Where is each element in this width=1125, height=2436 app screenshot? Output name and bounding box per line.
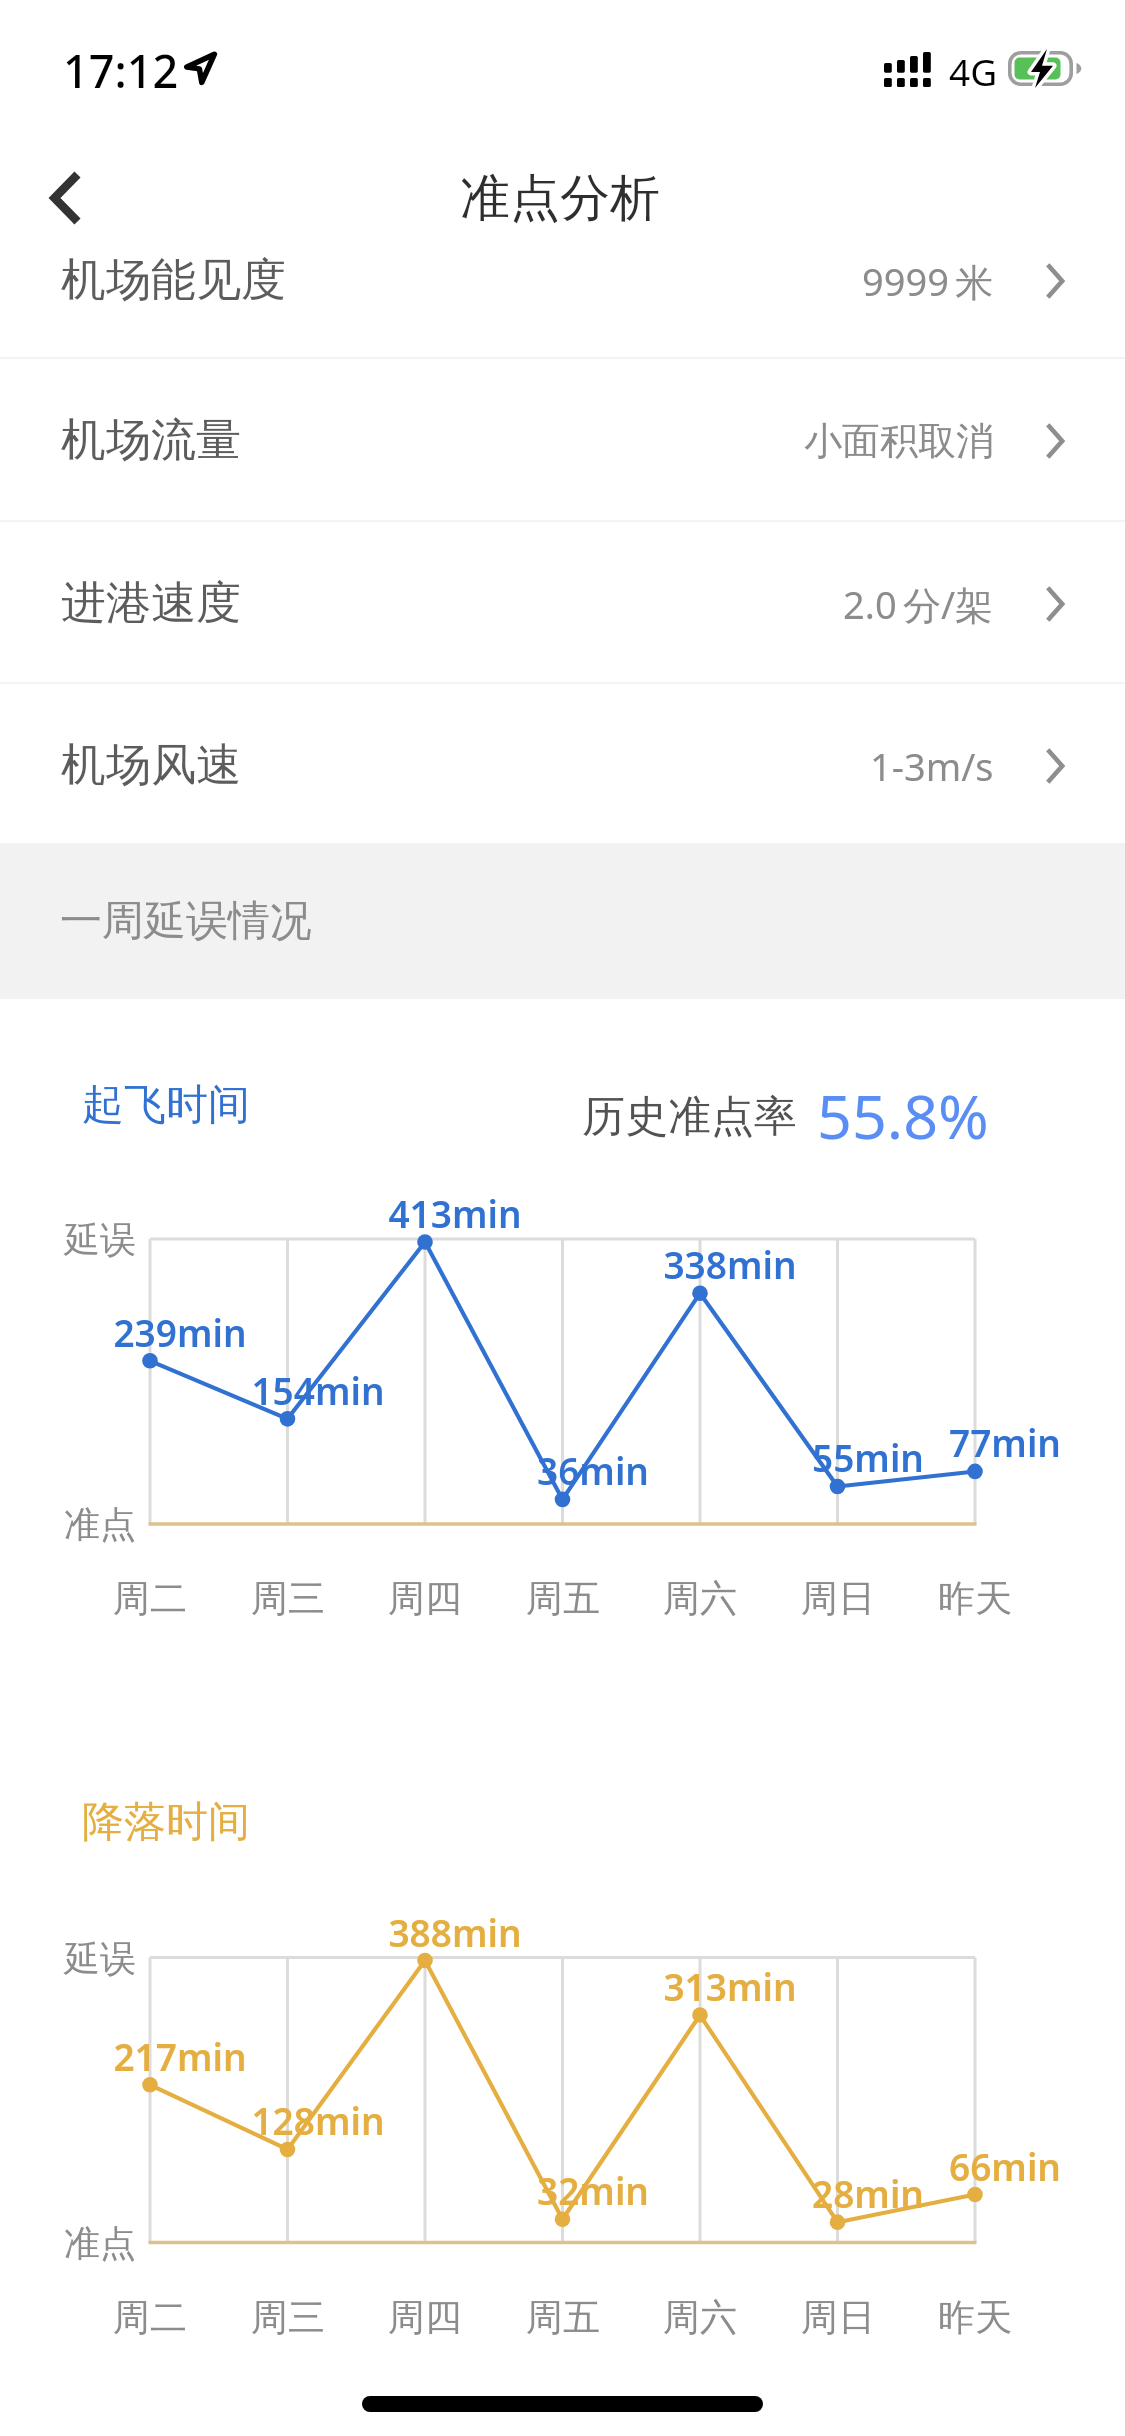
staticText: 66min: [949, 2141, 1061, 2191]
staticText: 周六: [663, 2294, 737, 2341]
button[interactable]: Back: [8, 145, 120, 251]
staticText: 周二: [113, 1575, 187, 1622]
staticText: 217min: [113, 2031, 247, 2081]
staticText: 周日: [801, 2294, 875, 2341]
button[interactable]: 机场能见度: [0, 199, 1125, 362]
staticText: 388min: [388, 1907, 522, 1957]
staticText: 延误: [64, 1217, 136, 1262]
staticText: 准点分析: [460, 167, 660, 230]
staticText: 延误: [64, 1936, 136, 1981]
staticText: 154min: [251, 1365, 385, 1415]
staticText: 进港速度: [61, 575, 241, 632]
staticText: 周六: [663, 1575, 737, 1622]
staticText: 413min: [388, 1188, 522, 1238]
staticText: 313min: [663, 1961, 797, 2011]
staticText: 55.8%: [817, 1074, 989, 1157]
staticText: 77min: [949, 1417, 1061, 1467]
button[interactable]: 机场风速: [0, 684, 1125, 847]
staticText: 周四: [388, 1575, 462, 1622]
staticText: 周三: [251, 1575, 325, 1622]
staticText: 55min: [812, 1432, 924, 1482]
staticText: 周三: [251, 2294, 325, 2341]
staticText: 338min: [663, 1239, 797, 1289]
staticText: 昨天: [938, 2294, 1012, 2341]
button[interactable]: 进港速度: [0, 522, 1125, 685]
staticText: 小面积取消: [804, 417, 994, 465]
staticText: 降落时间: [82, 1796, 250, 1849]
staticText: 起飞时间: [82, 1079, 250, 1132]
staticText: 周日: [801, 1575, 875, 1622]
staticText: 32min: [537, 2165, 649, 2215]
staticText: 2.0 分/架: [843, 578, 994, 630]
staticText: 9999 米: [862, 255, 994, 307]
staticText: 17:12: [63, 40, 179, 101]
staticText: 周二: [113, 2294, 187, 2341]
staticText: 昨天: [938, 1575, 1012, 1622]
staticText: 28min: [812, 2168, 924, 2218]
staticText: 1-3m/s: [870, 740, 994, 792]
staticText: 36min: [537, 1445, 649, 1495]
staticText: 周五: [526, 1575, 600, 1622]
staticText: 239min: [113, 1307, 247, 1357]
staticText: 4G: [949, 46, 998, 96]
staticText: 一周延误情况: [60, 895, 312, 948]
staticText: 128min: [251, 2095, 385, 2145]
staticText: 周四: [388, 2294, 462, 2341]
staticText: 机场风速: [61, 737, 241, 794]
staticText: 周五: [526, 2294, 600, 2341]
staticText: 历史准点率: [582, 1090, 797, 1144]
staticText: 准点: [64, 2221, 136, 2266]
staticText: 机场能见度: [61, 252, 286, 309]
button[interactable]: 机场流量: [0, 359, 1125, 522]
staticText: 准点: [64, 1502, 136, 1547]
staticText: 机场流量: [61, 412, 241, 469]
